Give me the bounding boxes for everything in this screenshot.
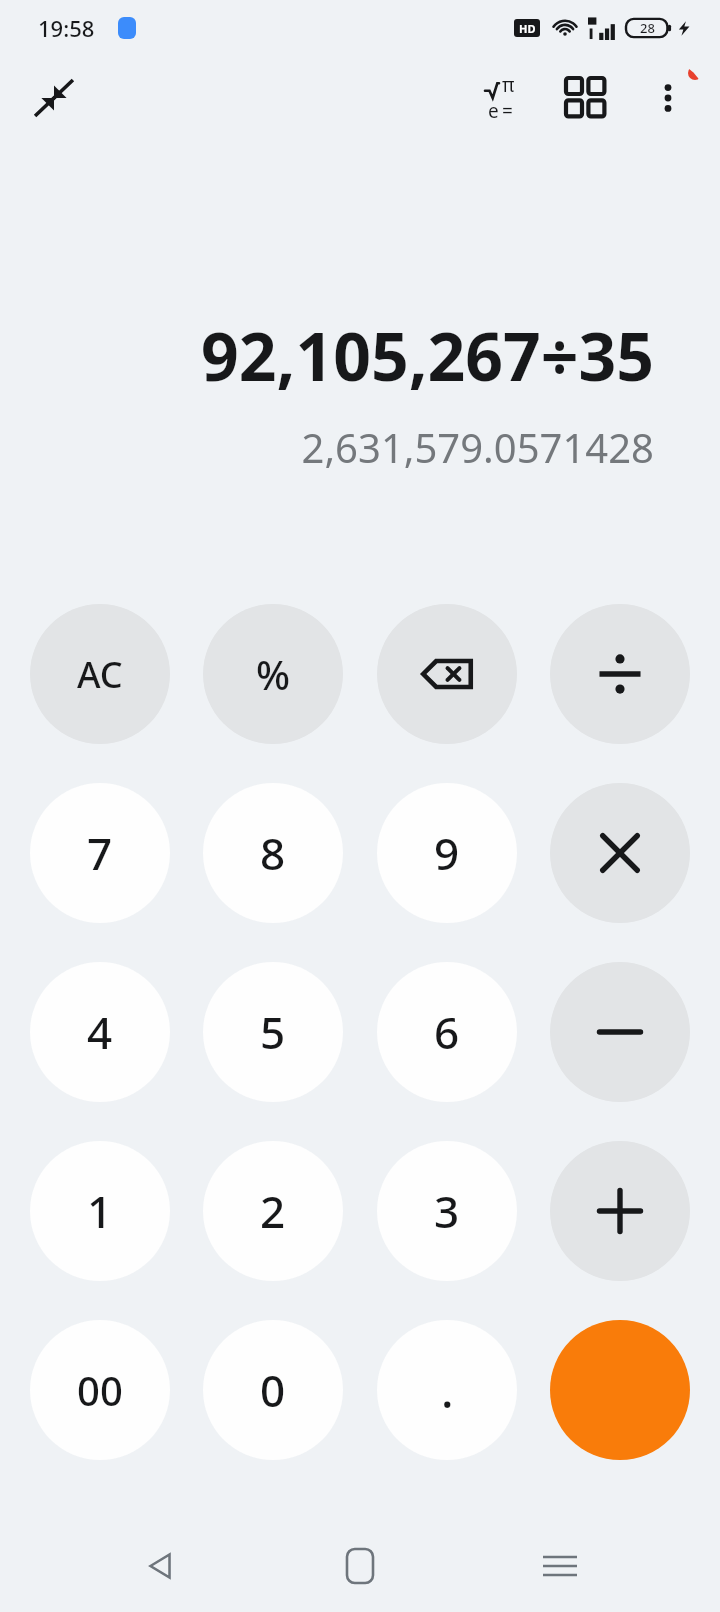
button[interactable]: Plus [550, 1141, 690, 1281]
staticText: 6 [434, 1002, 460, 1062]
button[interactable]: 4 [30, 962, 170, 1102]
button[interactable]: Converters [550, 62, 622, 134]
staticText: 2,631,579.0571428 [0, 420, 654, 474]
staticText: π [502, 72, 515, 98]
button[interactable]: Collapse [18, 62, 90, 134]
button[interactable]: % [203, 604, 343, 744]
staticText: 3 [434, 1181, 460, 1241]
staticText: . [441, 1359, 454, 1422]
button[interactable]: 9 [377, 783, 517, 923]
staticText: 7 [87, 823, 113, 883]
staticText: 19:58 [38, 13, 95, 43]
button[interactable]: 00 [30, 1320, 170, 1460]
button[interactable]: Divide [550, 604, 690, 744]
button[interactable]: 8 [203, 783, 343, 923]
button[interactable]: 5 [203, 962, 343, 1102]
staticText: 5 [260, 1002, 286, 1062]
button[interactable]: Home [320, 1526, 400, 1606]
button[interactable]: Backspace [377, 604, 517, 744]
staticText: AC [77, 650, 123, 699]
button[interactable]: 7 [30, 783, 170, 923]
staticText: 28 [640, 19, 655, 37]
button[interactable]: . [377, 1320, 517, 1460]
staticText: 2 [260, 1181, 286, 1241]
staticText: 92,105,267÷35 [0, 310, 654, 400]
button[interactable]: Back [120, 1526, 200, 1606]
staticText: 0 [260, 1360, 286, 1420]
staticText: = [502, 98, 513, 124]
button[interactable]: Recent apps [520, 1526, 600, 1606]
staticText: HD [519, 21, 536, 36]
staticText: 9 [434, 823, 460, 883]
staticText: 1 [87, 1181, 113, 1241]
button[interactable]: Scientific mode [464, 62, 536, 134]
button[interactable]: 3 [377, 1141, 517, 1281]
staticText: e [488, 98, 499, 124]
button[interactable]: Equals [550, 1320, 690, 1460]
button[interactable]: 1 [30, 1141, 170, 1281]
button[interactable]: Multiply [550, 783, 690, 923]
button[interactable]: AC [30, 604, 170, 744]
staticText: 00 [77, 1363, 123, 1417]
button[interactable]: Minus [550, 962, 690, 1102]
staticText: 8 [260, 823, 286, 883]
button[interactable]: 0 [203, 1320, 343, 1460]
staticText: % [256, 647, 291, 701]
button[interactable]: More options [632, 62, 704, 134]
staticText: 4 [87, 1002, 113, 1062]
button[interactable]: 2 [203, 1141, 343, 1281]
button[interactable]: 6 [377, 962, 517, 1102]
